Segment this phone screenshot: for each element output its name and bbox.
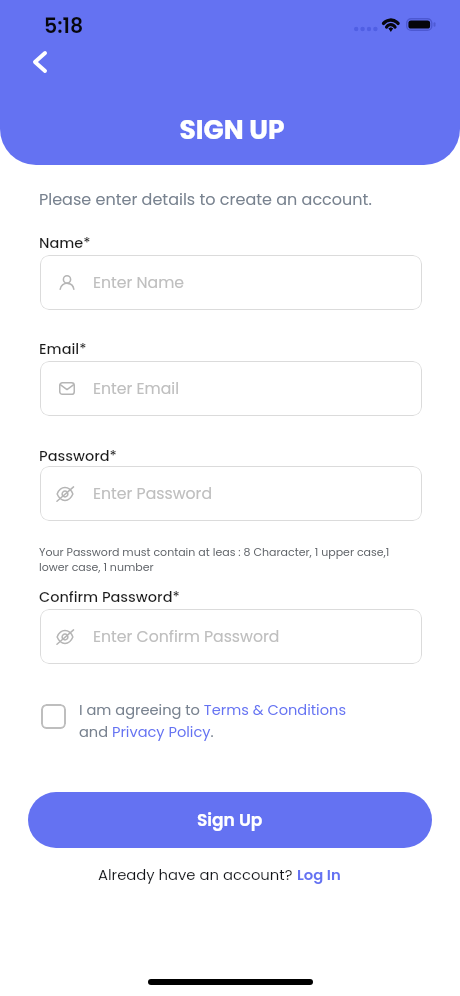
button[interactable]: Sign Up (28, 792, 432, 848)
staticText: Enter Confirm Password (93, 626, 280, 648)
staticText: Sign Up (197, 808, 263, 832)
staticText: Enter Email (93, 378, 180, 400)
button[interactable]: Enter Email (40, 361, 422, 416)
staticText: 5:18 (44, 11, 84, 40)
staticText: Enter Password (93, 483, 212, 505)
staticText: I am agreeing to Terms & Conditions and … (79, 700, 347, 742)
staticText: Enter Name (93, 272, 185, 294)
button[interactable]: Back (21, 43, 59, 81)
staticText: Name* (39, 233, 91, 253)
button[interactable]: Enter Name (40, 255, 422, 310)
staticText: Log In (297, 864, 341, 885)
staticText: Password* (39, 446, 117, 466)
staticText: Please enter details to create an accoun… (39, 188, 372, 210)
staticText: Confirm Password* (39, 587, 180, 607)
staticText: Email* (39, 339, 87, 359)
button[interactable]: Agree to terms and conditions (41, 704, 66, 729)
button[interactable]: Enter Password (40, 466, 422, 521)
staticText: SIGN UP (2, 111, 460, 148)
staticText: Already have an account? (98, 864, 297, 885)
button[interactable]: Enter Confirm Password (40, 609, 422, 664)
staticText: Your Password must contain at leas : 8 C… (39, 544, 390, 575)
button[interactable]: Log In (297, 864, 341, 885)
